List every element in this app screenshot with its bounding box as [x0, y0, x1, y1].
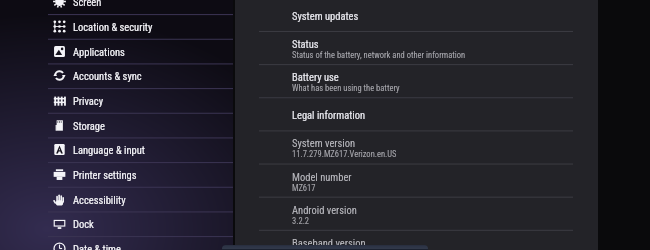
staticText: System updates [292, 10, 359, 22]
button[interactable]: Date & time [0, 236, 233, 250]
staticText: Baseband version [292, 237, 366, 249]
staticText: Language & input [73, 144, 145, 156]
button[interactable]: System updates [235, 0, 598, 31]
staticText: Android version [292, 204, 357, 216]
staticText: Status of the battery, network and other… [292, 50, 466, 60]
staticText: Status [292, 38, 319, 50]
button[interactable]: Applications [0, 39, 233, 64]
button[interactable]: Model number [235, 164, 598, 197]
staticText: Location & security [73, 21, 153, 33]
staticText: Battery use [292, 71, 339, 83]
staticText: Applications [73, 46, 125, 58]
button[interactable]: Storage [0, 113, 233, 138]
staticText: Printer settings [73, 169, 137, 181]
staticText: 11.7.279.MZ617.Verizon.en.US [292, 149, 397, 159]
button[interactable]: Android version [235, 197, 598, 230]
staticText: Model number [292, 171, 352, 183]
button[interactable]: Printer settings [0, 162, 233, 187]
staticText: What has been using the battery [292, 83, 400, 93]
button[interactable]: Baseband version [235, 230, 598, 250]
button[interactable]: Status [235, 31, 598, 64]
button[interactable]: Language & input [0, 137, 233, 162]
staticText: Accounts & sync [73, 70, 142, 82]
button[interactable]: Privacy [0, 88, 233, 113]
staticText: Legal information [292, 109, 366, 121]
staticText: 3.2.2 [292, 216, 310, 226]
button[interactable]: System version [235, 130, 598, 163]
button[interactable]: Legal information [235, 97, 598, 130]
button[interactable]: Battery use [235, 64, 598, 97]
staticText: Privacy [73, 95, 104, 107]
staticText: Storage [73, 120, 105, 132]
button[interactable]: Accounts & sync [0, 63, 233, 88]
button[interactable]: Location & security [0, 14, 233, 39]
staticText: Screen [73, 0, 102, 8]
staticText: MZ617 [292, 183, 316, 193]
staticText: Date & time [73, 243, 121, 250]
button[interactable]: Dock [0, 211, 233, 236]
button[interactable]: Screen [0, 0, 233, 14]
button[interactable]: Accessibility [0, 187, 233, 212]
staticText: Accessibility [73, 194, 126, 206]
staticText: Dock [73, 218, 94, 230]
staticText: System version [292, 137, 356, 149]
